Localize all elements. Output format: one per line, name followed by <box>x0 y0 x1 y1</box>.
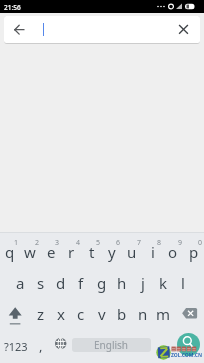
button[interactable]: w <box>20 236 40 268</box>
button[interactable]: z <box>31 298 51 330</box>
button[interactable]: ?123 <box>0 330 31 362</box>
button[interactable] <box>172 298 204 330</box>
button[interactable]: y <box>102 236 122 268</box>
staticText: o <box>168 242 178 262</box>
staticText: a <box>16 273 25 293</box>
button[interactable]: x <box>51 298 71 330</box>
button[interactable]: o <box>163 236 183 268</box>
staticText: ZOL.COM.CN <box>171 352 202 359</box>
staticText: l <box>181 273 185 293</box>
button[interactable]: g <box>92 267 112 299</box>
button[interactable]: t <box>82 236 102 268</box>
staticText: x <box>57 304 65 324</box>
button[interactable]: c <box>71 298 91 330</box>
staticText: 8 <box>157 238 162 248</box>
button[interactable]: m <box>153 298 173 330</box>
button[interactable]: h <box>112 267 132 299</box>
staticText: p <box>189 242 199 262</box>
staticText: y <box>108 242 116 262</box>
button[interactable] <box>172 18 195 41</box>
button[interactable]: u <box>122 236 142 268</box>
button[interactable]: a <box>10 267 30 299</box>
staticText: r <box>68 242 75 262</box>
staticText: 4 <box>76 238 81 248</box>
staticText: c <box>77 304 85 324</box>
staticText: w <box>24 242 36 262</box>
button[interactable] <box>8 18 31 41</box>
staticText: d <box>56 273 66 293</box>
button[interactable]: l <box>173 267 193 299</box>
button[interactable]: r <box>61 236 81 268</box>
staticText: 0 <box>198 238 203 248</box>
staticText: 6 <box>116 238 121 248</box>
staticText: , <box>39 337 43 355</box>
staticText: 7 <box>137 238 142 248</box>
staticText: 3 <box>55 238 60 248</box>
staticText: English <box>94 338 129 352</box>
staticText: q <box>5 242 15 262</box>
button[interactable]: b <box>112 298 132 330</box>
button[interactable]: English <box>72 338 151 352</box>
button[interactable]: j <box>133 267 153 299</box>
button[interactable]: n <box>133 298 153 330</box>
staticText: u <box>127 242 137 262</box>
button[interactable]: d <box>51 267 71 299</box>
staticText: k <box>159 273 168 293</box>
staticText: n <box>138 304 148 324</box>
button[interactable] <box>177 333 200 356</box>
button[interactable]: i <box>143 236 163 268</box>
staticText: z <box>37 304 45 324</box>
staticText: t <box>89 242 95 262</box>
staticText: h <box>117 273 127 293</box>
button[interactable] <box>51 330 71 362</box>
staticText: v <box>98 304 106 324</box>
button[interactable]: k <box>153 267 173 299</box>
staticText: 21:56 <box>4 3 21 12</box>
button[interactable]: v <box>92 298 112 330</box>
staticText: j <box>141 273 145 293</box>
button[interactable]: q <box>0 236 20 268</box>
button[interactable]: , <box>31 330 51 362</box>
staticText: 2 <box>35 238 40 248</box>
staticText: s <box>37 273 45 293</box>
button[interactable] <box>0 298 31 330</box>
staticText: g <box>97 273 107 293</box>
staticText: i <box>151 242 155 262</box>
staticText: 9 <box>178 238 183 248</box>
button[interactable]: e <box>41 236 61 268</box>
staticText: f <box>78 273 84 293</box>
staticText: m <box>156 304 171 324</box>
button[interactable]: f <box>71 267 91 299</box>
staticText: ?123 <box>4 339 28 354</box>
staticText: b <box>117 304 127 324</box>
staticText: e <box>47 242 56 262</box>
staticText: 5 <box>96 238 101 248</box>
button[interactable]: p <box>184 236 204 268</box>
staticText: 1 <box>14 238 19 248</box>
button[interactable]: s <box>31 267 51 299</box>
